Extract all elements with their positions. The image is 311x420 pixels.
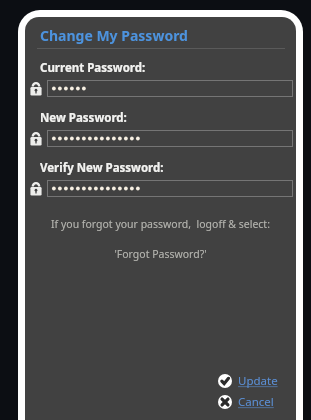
button[interactable]: Update xyxy=(218,373,278,389)
button[interactable]: Cancel xyxy=(218,394,274,410)
other: Locked field xyxy=(27,179,45,197)
other: Locked field xyxy=(27,129,45,147)
staticText: 'Forgot Password?' xyxy=(114,247,207,261)
staticText: Current Password: xyxy=(40,60,146,76)
staticText: If you forgot your password, logoff & se… xyxy=(51,217,270,231)
staticText: Update xyxy=(238,373,278,389)
staticText: Change My Password xyxy=(40,26,188,45)
staticText: New Password: xyxy=(40,110,127,126)
staticText: Cancel xyxy=(238,394,274,410)
button[interactable] xyxy=(47,130,293,147)
button[interactable] xyxy=(47,180,293,197)
staticText: Verify New Password: xyxy=(40,160,164,176)
other: Locked field xyxy=(27,79,45,97)
button[interactable] xyxy=(47,80,293,97)
